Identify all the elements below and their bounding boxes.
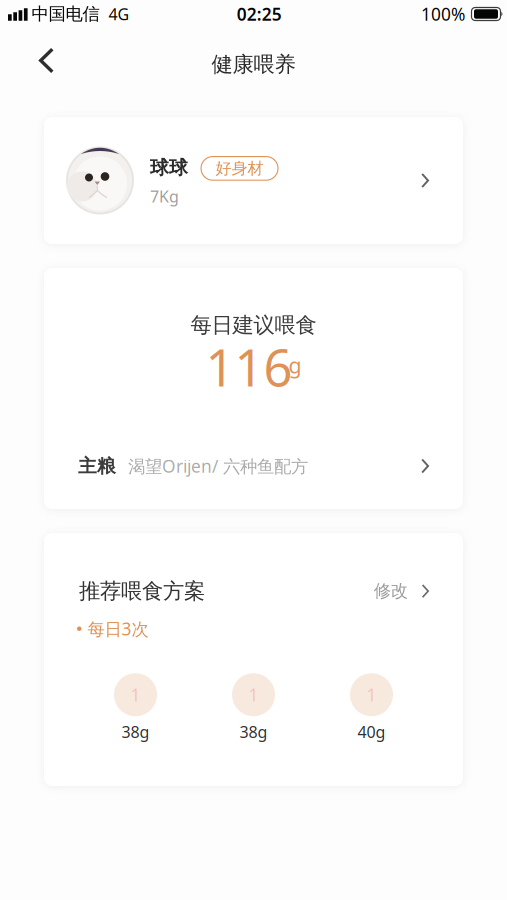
staticText: 1 [130, 683, 140, 706]
staticText: 主粮 [78, 454, 116, 477]
staticText: 推荐喂食方案 [79, 578, 205, 604]
staticText: 好身材 [215, 158, 263, 178]
staticText: 4G [109, 3, 130, 25]
staticText: 38g [121, 721, 149, 742]
staticText: 渴望Orijen/ 六种鱼配方 [128, 454, 308, 477]
staticText: 38g [239, 721, 267, 742]
staticText: 健康喂养 [211, 51, 295, 78]
staticText: 1 [248, 683, 258, 706]
button[interactable]: 球球 [44, 117, 463, 244]
staticText: 球球 [150, 156, 188, 179]
staticText: 修改 [374, 580, 408, 602]
staticText: 116 [205, 333, 292, 400]
staticText: 40g [357, 721, 385, 742]
staticText: 100% [421, 2, 465, 25]
button[interactable]: 主粮 [44, 439, 463, 493]
button[interactable]: Back [0, 30, 76, 86]
staticText: 02:25 [237, 2, 282, 25]
button[interactable]: 修改 [374, 580, 429, 602]
staticText: 每日3次 [87, 617, 148, 640]
staticText: g [288, 351, 301, 379]
staticText: 每日建议喂食 [190, 312, 316, 338]
staticText: 1 [366, 683, 376, 706]
staticText: 中国电信 [32, 3, 100, 25]
staticText: 7Kg [150, 186, 179, 207]
